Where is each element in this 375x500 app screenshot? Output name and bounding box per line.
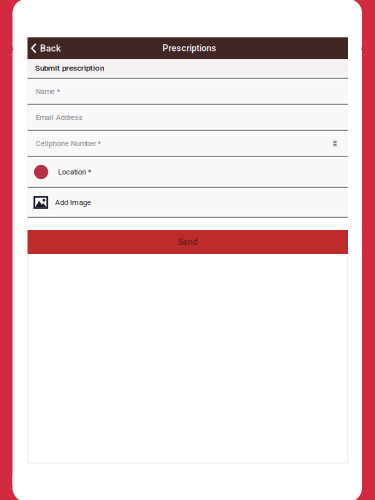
staticText: Prescriptions [163,43,217,53]
button[interactable]: Email Address [27,106,348,132]
staticText: Location * [58,168,91,176]
staticText: Send [178,237,198,247]
button[interactable]: Name * [27,80,348,106]
button[interactable]: Cellphone Number * [27,132,348,158]
button[interactable]: Send [27,230,348,254]
staticText: Cellphone Number * [36,139,101,148]
button[interactable]: Location * [27,158,348,189]
button[interactable]: Back [27,37,67,59]
staticText: Submit prescription [35,63,104,73]
staticText: Email Address [36,113,83,122]
staticText: Back [40,43,61,54]
button[interactable]: Add Image [27,189,348,219]
staticText: Add Image [55,198,91,207]
staticText: Name * [36,87,60,96]
